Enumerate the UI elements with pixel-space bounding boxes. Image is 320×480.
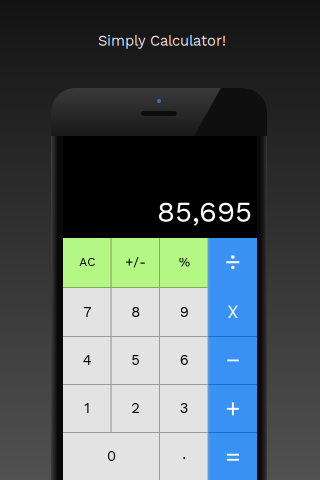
staticText: X xyxy=(227,301,238,323)
button[interactable]: 3 xyxy=(160,384,208,432)
staticText: 2 xyxy=(131,399,140,417)
button[interactable]: 7 xyxy=(63,288,111,336)
button[interactable]: 2 xyxy=(111,384,160,432)
button[interactable]: . xyxy=(160,432,208,480)
button[interactable]: 6 xyxy=(160,336,208,384)
button[interactable]: + xyxy=(208,384,257,432)
staticText: = xyxy=(225,441,240,471)
staticText: 8 xyxy=(131,303,140,321)
button[interactable]: 1 xyxy=(63,384,111,432)
staticText: 3 xyxy=(180,399,189,417)
button[interactable]: % xyxy=(160,238,208,288)
staticText: 9 xyxy=(180,303,189,321)
staticText: % xyxy=(179,254,190,270)
staticText: ÷ xyxy=(225,246,241,278)
button[interactable]: 5 xyxy=(111,336,160,384)
staticText: + xyxy=(225,393,240,423)
button[interactable]: 8 xyxy=(111,288,160,336)
button[interactable]: AC xyxy=(63,238,111,288)
button[interactable]: = xyxy=(208,432,257,480)
staticText: 6 xyxy=(180,351,189,369)
staticText: 5 xyxy=(131,351,140,369)
button[interactable]: X xyxy=(208,288,257,336)
staticText: 4 xyxy=(83,351,92,369)
button[interactable]: +/- xyxy=(111,238,160,288)
staticText: 0 xyxy=(107,447,116,465)
staticText: Simply Calculator! xyxy=(98,32,226,49)
staticText: 7 xyxy=(83,303,91,321)
button[interactable]: − xyxy=(208,336,257,384)
staticText: − xyxy=(226,346,240,374)
staticText: +/- xyxy=(125,254,146,270)
staticText: . xyxy=(182,445,186,463)
staticText: 1 xyxy=(84,399,90,417)
staticText: AC xyxy=(79,255,95,269)
button[interactable]: 4 xyxy=(63,336,111,384)
button[interactable]: 9 xyxy=(160,288,208,336)
button[interactable]: ÷ xyxy=(208,238,257,288)
button[interactable]: 0 xyxy=(63,432,160,480)
staticText: 85,695 xyxy=(157,195,252,229)
